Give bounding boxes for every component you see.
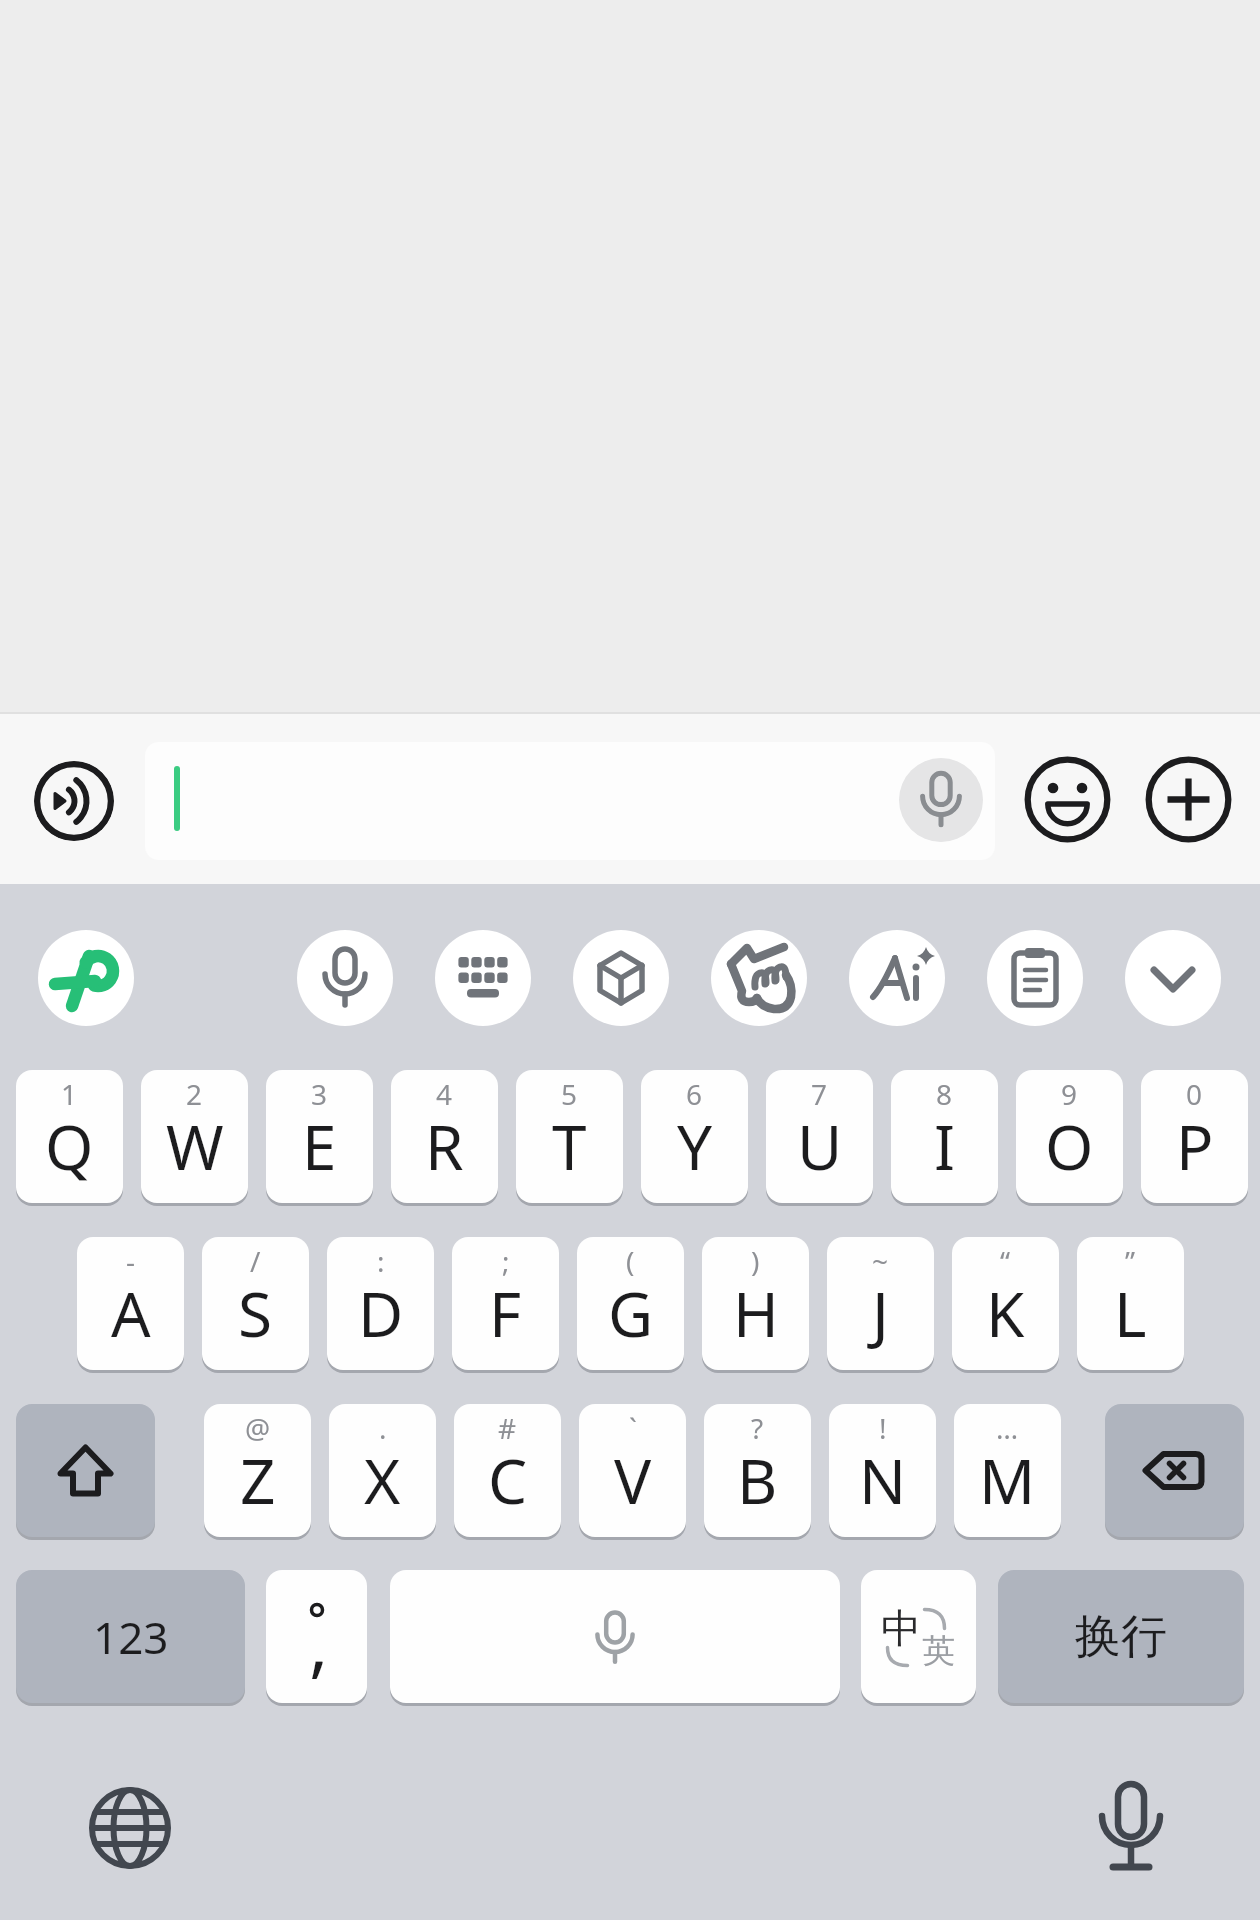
staticText: ;	[502, 1242, 510, 1280]
button[interactable]: …	[954, 1404, 1061, 1537]
button[interactable]: ”	[1077, 1237, 1184, 1370]
staticText: 3	[311, 1075, 328, 1113]
button[interactable]: ,	[266, 1570, 367, 1703]
button[interactable]	[34, 761, 114, 841]
button[interactable]: !	[829, 1404, 936, 1537]
staticText: U	[797, 1104, 843, 1188]
staticText: 6	[686, 1075, 703, 1113]
staticText: 5	[561, 1075, 578, 1113]
button[interactable]	[849, 930, 945, 1026]
button[interactable]: /	[202, 1237, 309, 1370]
button[interactable]: 9	[1016, 1070, 1123, 1203]
staticText: P	[1176, 1104, 1214, 1188]
staticText: 1	[61, 1075, 78, 1113]
staticText: -	[126, 1242, 136, 1280]
button[interactable]	[145, 742, 995, 860]
staticText: ?	[751, 1409, 764, 1447]
button[interactable]: 中	[861, 1570, 976, 1703]
staticText: :	[377, 1242, 385, 1280]
button[interactable]	[1080, 1772, 1180, 1872]
button[interactable]: “	[952, 1237, 1059, 1370]
button[interactable]: 8	[891, 1070, 998, 1203]
staticText: 123	[93, 1607, 169, 1667]
button[interactable]	[1125, 930, 1221, 1026]
button[interactable]: ;	[452, 1237, 559, 1370]
button[interactable]	[390, 1570, 840, 1703]
staticText: 0	[1186, 1075, 1203, 1113]
staticText: Q	[45, 1104, 94, 1188]
button[interactable]: .	[329, 1404, 436, 1537]
staticText: “	[1000, 1242, 1011, 1280]
button[interactable]: 换行	[998, 1570, 1244, 1703]
staticText: ,	[309, 1593, 329, 1691]
staticText: Z	[240, 1438, 276, 1522]
button[interactable]: @	[204, 1404, 311, 1537]
staticText: 中	[881, 1603, 921, 1653]
staticText: 2	[186, 1075, 203, 1113]
button[interactable]	[711, 930, 807, 1026]
staticText: 7	[811, 1075, 828, 1113]
staticText: ”	[1125, 1242, 1136, 1280]
button[interactable]: 4	[391, 1070, 498, 1203]
button[interactable]: 2	[141, 1070, 248, 1203]
button[interactable]	[16, 1404, 155, 1537]
staticText: V	[614, 1438, 652, 1522]
button[interactable]: )	[702, 1237, 809, 1370]
staticText: B	[737, 1438, 778, 1522]
staticText: .	[379, 1409, 387, 1447]
staticText: J	[872, 1271, 889, 1355]
staticText: 9	[1061, 1075, 1078, 1113]
button[interactable]: #	[454, 1404, 561, 1537]
button[interactable]: 1	[16, 1070, 123, 1203]
button[interactable]	[987, 930, 1083, 1026]
staticText: ~	[872, 1242, 889, 1280]
button[interactable]: `	[579, 1404, 686, 1537]
button[interactable]: 3	[266, 1070, 373, 1203]
button[interactable]	[573, 930, 669, 1026]
button[interactable]: :	[327, 1237, 434, 1370]
button[interactable]	[1146, 757, 1230, 841]
staticText: #	[498, 1409, 517, 1447]
staticText: /	[250, 1242, 261, 1280]
button[interactable]: ~	[827, 1237, 934, 1370]
staticText: @	[245, 1409, 271, 1447]
staticText: Y	[677, 1104, 713, 1188]
button[interactable]: 7	[766, 1070, 873, 1203]
staticText: …	[996, 1409, 1019, 1447]
button[interactable]	[297, 930, 393, 1026]
staticText: K	[986, 1271, 1025, 1355]
button[interactable]	[899, 758, 983, 842]
button[interactable]: 0	[1141, 1070, 1248, 1203]
button[interactable]: 123	[16, 1570, 245, 1703]
button[interactable]: 6	[641, 1070, 748, 1203]
button[interactable]	[1105, 1404, 1244, 1537]
staticText: 换行	[1075, 1608, 1167, 1666]
button[interactable]	[80, 1778, 180, 1878]
button[interactable]: ?	[704, 1404, 811, 1537]
button[interactable]	[38, 930, 134, 1026]
staticText: (	[626, 1242, 635, 1280]
staticText: N	[859, 1438, 907, 1522]
staticText: S	[238, 1271, 273, 1355]
staticText: `	[629, 1409, 637, 1447]
button[interactable]: (	[577, 1237, 684, 1370]
staticText: C	[488, 1438, 528, 1522]
button[interactable]	[1025, 757, 1109, 841]
staticText: 4	[436, 1075, 453, 1113]
staticText: )	[751, 1242, 760, 1280]
button[interactable]: -	[77, 1237, 184, 1370]
button[interactable]: 5	[516, 1070, 623, 1203]
staticText: I	[934, 1104, 956, 1188]
staticText: H	[733, 1271, 779, 1355]
staticText: M	[979, 1438, 1036, 1522]
staticText: O	[1045, 1104, 1094, 1188]
staticText: 英	[922, 1630, 955, 1672]
staticText: A	[111, 1271, 151, 1355]
staticText: W	[166, 1104, 224, 1188]
staticText: E	[302, 1104, 337, 1188]
staticText: T	[552, 1104, 587, 1188]
button[interactable]	[435, 930, 531, 1026]
staticText: X	[364, 1438, 401, 1522]
staticText: L	[1114, 1271, 1147, 1355]
staticText: F	[489, 1271, 522, 1355]
